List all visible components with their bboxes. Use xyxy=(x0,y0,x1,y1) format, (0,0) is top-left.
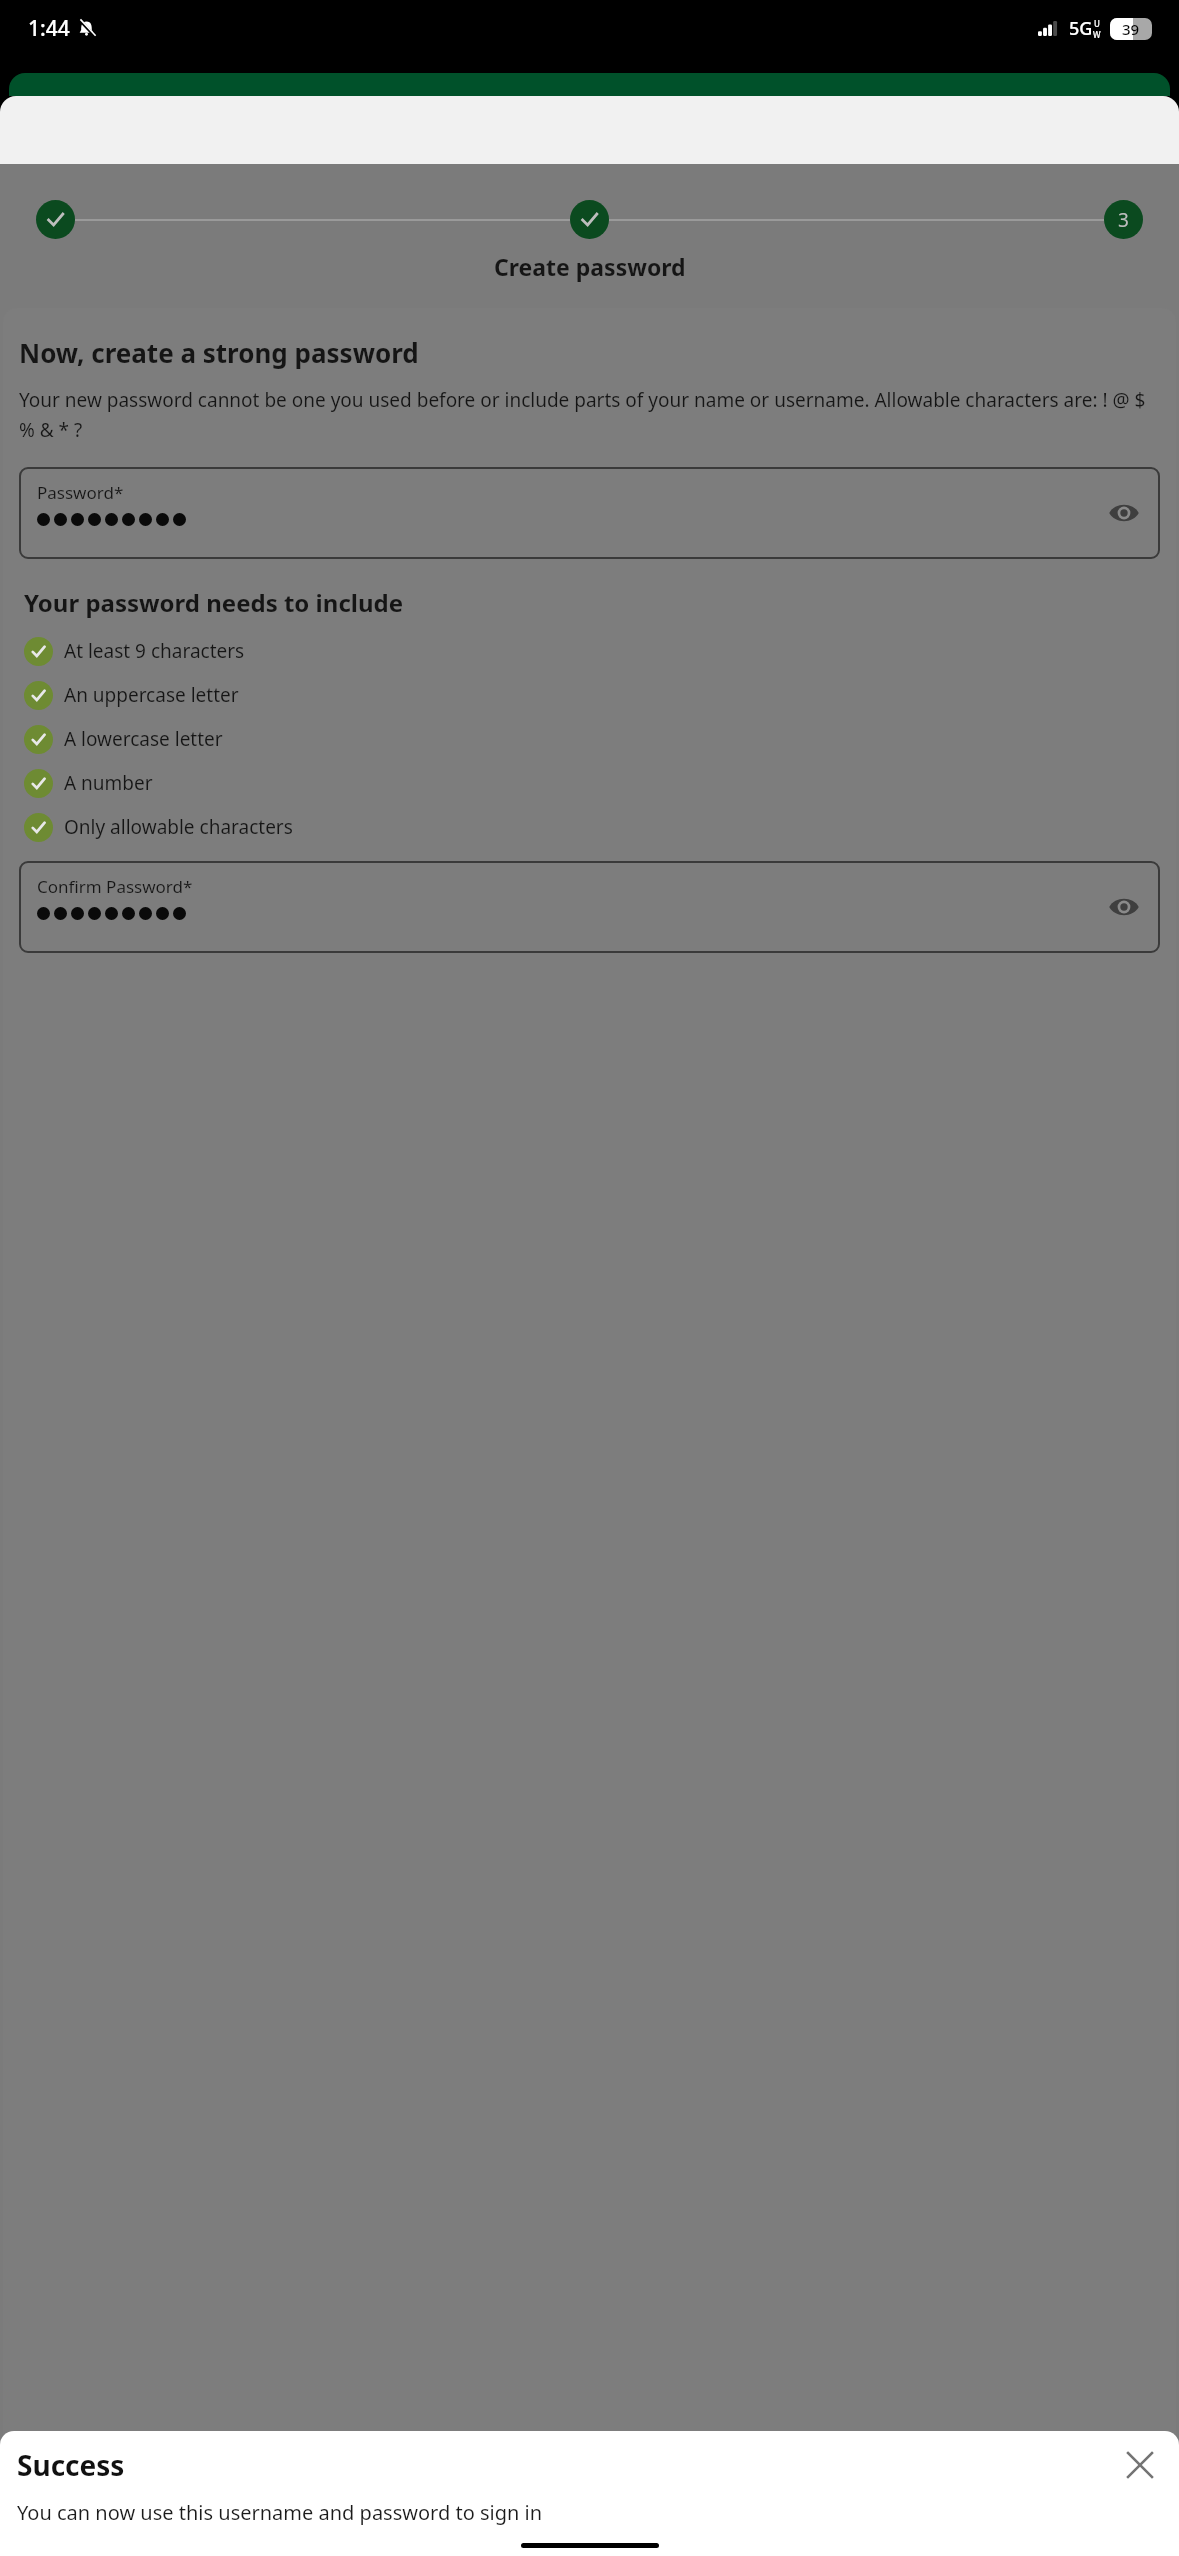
button[interactable]: Completed step xyxy=(36,200,75,239)
staticText: Only allowable characters xyxy=(64,814,293,840)
staticText: A lowercase letter xyxy=(64,726,223,752)
staticText: An uppercase letter xyxy=(64,682,239,708)
staticText: You can now use this username and passwo… xyxy=(17,2499,543,2526)
button[interactable]: Completed step xyxy=(570,200,609,239)
button[interactable]: Step 3 xyxy=(1104,200,1143,239)
staticText: Success xyxy=(17,2446,125,2484)
staticText: Your new password cannot be one you used… xyxy=(19,387,1160,442)
staticText: 1:44 xyxy=(28,14,70,43)
button[interactable]: Password* xyxy=(19,467,1160,559)
button[interactable]: Show password xyxy=(1102,885,1146,929)
staticText: 5G xyxy=(1069,16,1093,41)
button[interactable]: Confirm Password* xyxy=(19,861,1160,953)
button[interactable]: Show password xyxy=(1102,491,1146,535)
staticText: Your password needs to include xyxy=(24,586,404,619)
staticText: Now, create a strong password xyxy=(19,335,419,370)
staticText: 3 xyxy=(1118,207,1129,233)
staticText: At least 9 characters xyxy=(64,638,245,664)
staticText: Create password xyxy=(494,251,686,282)
staticText: A number xyxy=(64,770,153,796)
staticText: W xyxy=(1093,29,1101,40)
staticText: Confirm Password* xyxy=(37,875,193,898)
button[interactable]: Close xyxy=(1118,2443,1162,2487)
staticText: Password* xyxy=(37,481,124,504)
staticText: 39 xyxy=(1122,19,1140,39)
staticText: U xyxy=(1094,18,1100,29)
